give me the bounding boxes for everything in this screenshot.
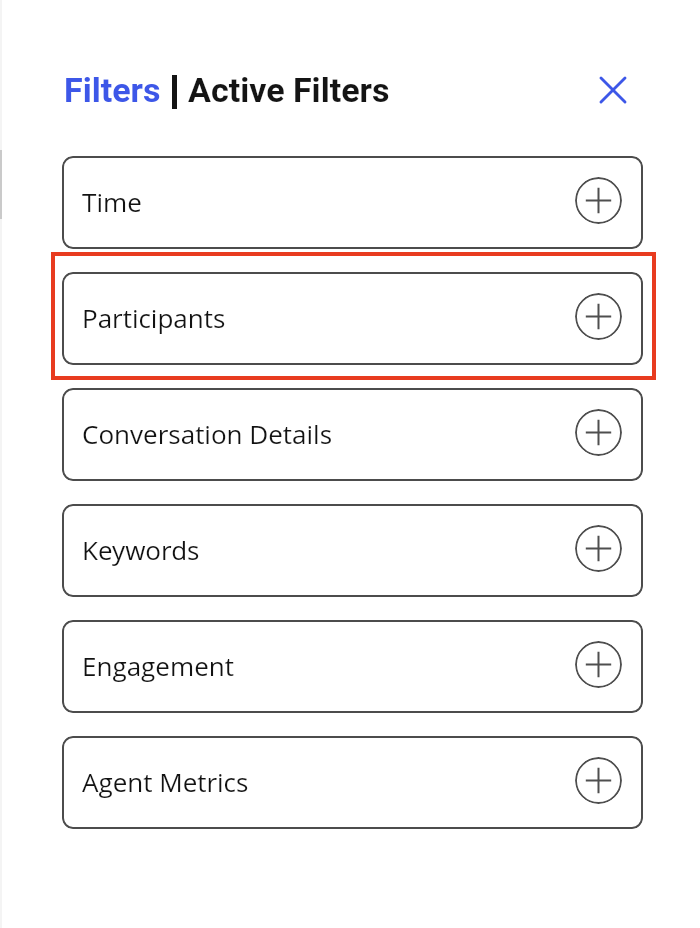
staticText: Active Filters xyxy=(188,70,390,110)
staticText: Agent Metrics xyxy=(82,764,249,799)
button[interactable]: Participants xyxy=(62,272,643,365)
button[interactable]: Engagement xyxy=(62,620,643,713)
button[interactable]: Add Keywords filter xyxy=(575,525,622,572)
button[interactable]: Conversation Details xyxy=(62,388,643,481)
button[interactable]: Time xyxy=(62,156,643,249)
staticText: Conversation Details xyxy=(82,416,333,451)
staticText: Keywords xyxy=(82,532,200,567)
button[interactable]: Close filters xyxy=(585,62,641,118)
button[interactable]: Keywords xyxy=(62,504,643,597)
staticText: Participants xyxy=(82,300,226,335)
staticText: Filters xyxy=(64,70,161,110)
button[interactable]: Add Time filter xyxy=(575,177,622,224)
button[interactable]: Agent Metrics xyxy=(62,736,643,829)
button[interactable]: Add Conversation Details filter xyxy=(575,409,622,456)
staticText: Time xyxy=(82,184,142,219)
staticText: Engagement xyxy=(82,648,234,683)
button[interactable]: Add Participants filter xyxy=(575,293,622,340)
button[interactable]: Add Engagement filter xyxy=(575,641,622,688)
button[interactable]: Add Agent Metrics filter xyxy=(575,757,622,804)
